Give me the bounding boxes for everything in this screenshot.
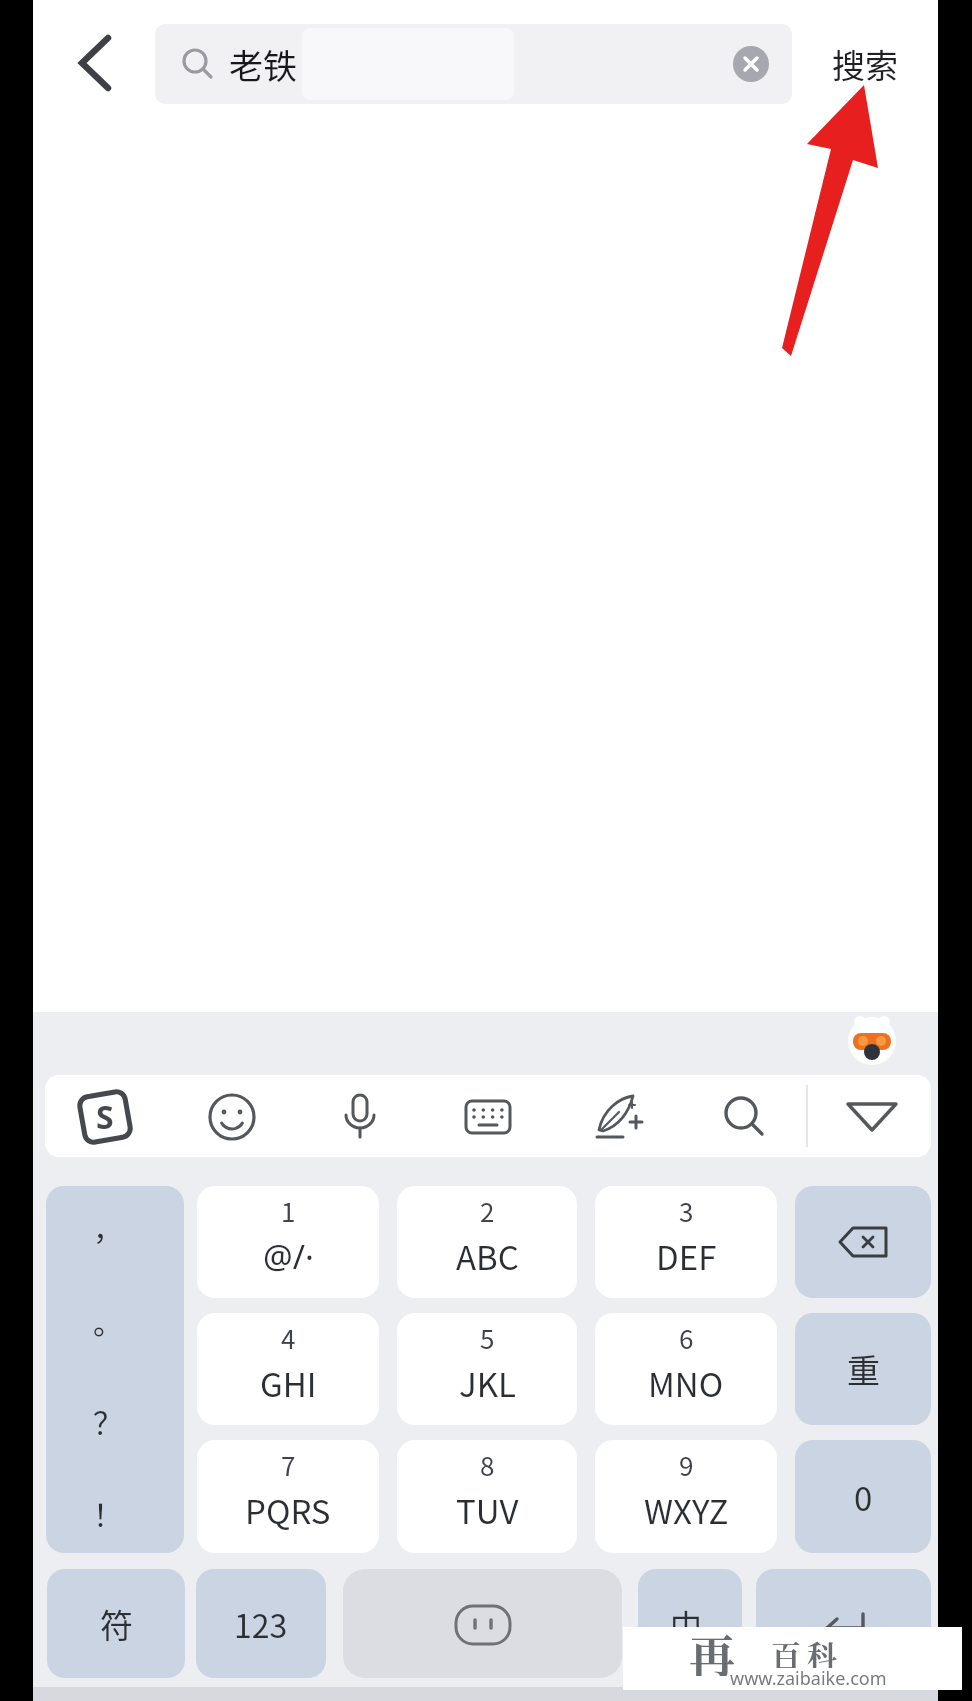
- button[interactable]: [205, 1090, 259, 1144]
- staticText: 老铁: [229, 40, 297, 89]
- button[interactable]: [197, 1440, 379, 1553]
- button[interactable]: 123: [196, 1569, 326, 1678]
- button[interactable]: [343, 1569, 622, 1678]
- button[interactable]: 重: [795, 1313, 931, 1425]
- button[interactable]: [155, 24, 792, 104]
- staticText: 3: [679, 1192, 694, 1230]
- staticText: 百科: [771, 1632, 843, 1668]
- staticText: 7: [281, 1446, 296, 1484]
- staticText: 重: [847, 1345, 880, 1393]
- button[interactable]: [461, 1090, 515, 1144]
- button[interactable]: [46, 1186, 184, 1553]
- button[interactable]: [845, 1093, 899, 1141]
- button[interactable]: 符: [47, 1569, 185, 1678]
- staticText: 6: [679, 1319, 694, 1357]
- button[interactable]: [589, 1090, 645, 1144]
- button[interactable]: [197, 1313, 379, 1425]
- button[interactable]: [60, 28, 130, 98]
- button[interactable]: [595, 1186, 777, 1298]
- staticText: @/·: [263, 1234, 314, 1279]
- staticText: JKL: [459, 1359, 516, 1407]
- staticText: 5: [480, 1319, 495, 1357]
- button[interactable]: [795, 1186, 931, 1298]
- staticText: 9: [679, 1446, 694, 1484]
- button[interactable]: [197, 1186, 379, 1298]
- staticText: WXYZ: [644, 1486, 729, 1534]
- staticText: 再: [689, 1620, 735, 1676]
- staticText: ？: [93, 1399, 123, 1442]
- staticText: DEF: [656, 1232, 717, 1280]
- staticText: 搜索: [832, 40, 898, 88]
- button[interactable]: [733, 46, 769, 82]
- button[interactable]: 搜索: [815, 24, 915, 104]
- button[interactable]: [397, 1440, 577, 1553]
- button[interactable]: [397, 1186, 577, 1298]
- staticText: ！: [93, 1491, 123, 1534]
- staticText: 。: [93, 1299, 123, 1342]
- button[interactable]: 0: [795, 1440, 931, 1553]
- button[interactable]: [333, 1090, 387, 1144]
- button[interactable]: 中.: [638, 1569, 742, 1678]
- staticText: 0: [854, 1473, 873, 1521]
- button[interactable]: S: [76, 1088, 134, 1146]
- staticText: 符: [100, 1600, 133, 1648]
- button[interactable]: [756, 1569, 931, 1678]
- button[interactable]: [397, 1313, 577, 1425]
- button[interactable]: [717, 1090, 771, 1144]
- staticText: www.zaibaike.com: [730, 1666, 887, 1690]
- staticText: ，: [93, 1205, 123, 1248]
- staticText: 1: [281, 1192, 296, 1230]
- staticText: TUV: [456, 1486, 519, 1534]
- staticText: PQRS: [245, 1486, 331, 1534]
- staticText: 123: [234, 1601, 288, 1647]
- button[interactable]: [595, 1313, 777, 1425]
- staticText: 2: [480, 1192, 495, 1230]
- staticText: MNO: [648, 1359, 724, 1407]
- staticText: S: [96, 1095, 114, 1139]
- button[interactable]: [595, 1440, 777, 1553]
- staticText: 4: [281, 1319, 296, 1357]
- staticText: ABC: [456, 1232, 519, 1280]
- staticText: 8: [480, 1446, 495, 1484]
- staticText: GHI: [260, 1359, 317, 1407]
- staticText: 中.: [670, 1601, 711, 1647]
